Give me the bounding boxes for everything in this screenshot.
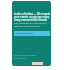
staticText: every moment with friends [14, 18, 48, 21]
button[interactable]: Get started now [14, 31, 50, 36]
staticText: your events so you can enjoy [14, 15, 50, 18]
staticText: Look no further — We organis [14, 12, 50, 15]
staticText: events in one single place. [14, 25, 41, 28]
staticText: Plan, organise and share all you [14, 22, 47, 25]
staticText: Already have account? [14, 54, 36, 57]
staticText: Get started now [15, 32, 34, 35]
staticText: Sign in here [14, 57, 26, 60]
button[interactable]: Get it on Google Play [32, 62, 43, 65]
